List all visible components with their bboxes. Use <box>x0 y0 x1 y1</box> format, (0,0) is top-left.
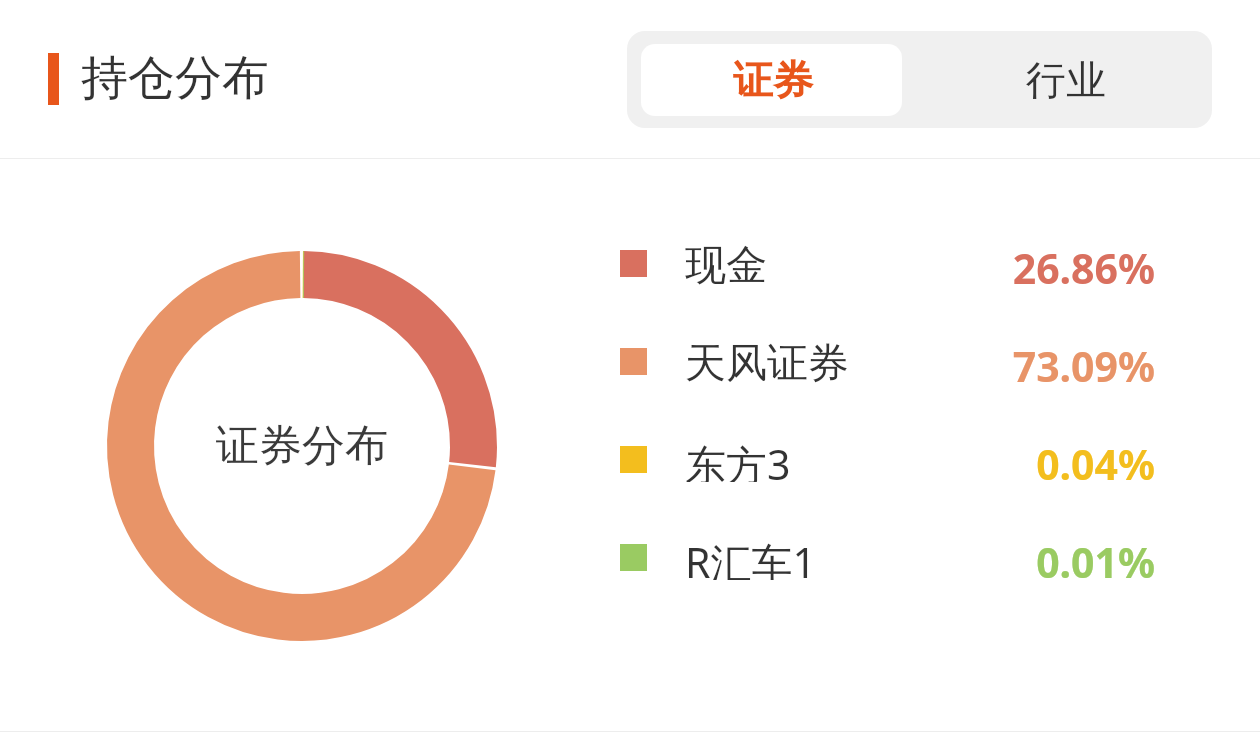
staticText: R汇车1 <box>685 534 816 580</box>
staticText: 73.09% <box>1012 338 1155 384</box>
button[interactable]: R汇车1 <box>620 534 1155 580</box>
staticText: 现金 <box>685 240 767 286</box>
staticText: 26.86% <box>1012 240 1155 286</box>
button[interactable]: 现金 <box>620 240 1155 286</box>
staticText: 行业 <box>1026 55 1106 105</box>
button[interactable]: 东方3 <box>620 436 1155 482</box>
staticText: 0.04% <box>1036 436 1155 482</box>
staticText: 证券分布 <box>216 419 388 473</box>
staticText: 证券 <box>733 55 813 105</box>
other: 证券分布饼图 <box>107 251 497 641</box>
button[interactable]: 天风证券 <box>620 338 1155 384</box>
button[interactable]: 行业 <box>919 31 1212 128</box>
staticText: 天风证券 <box>685 338 849 384</box>
staticText: 东方3 <box>685 436 791 482</box>
staticText: 持仓分布 <box>81 49 269 108</box>
staticText: 0.01% <box>1036 534 1155 580</box>
button[interactable]: 证券 <box>627 31 919 128</box>
